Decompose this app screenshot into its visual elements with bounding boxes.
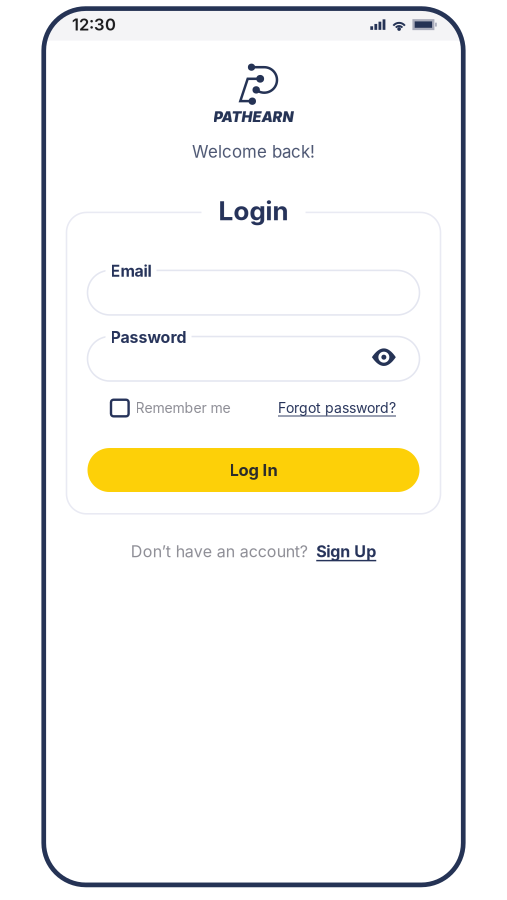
staticText: Sign Up: [316, 542, 376, 561]
staticText: Email: [110, 261, 151, 281]
button[interactable]: Remember me: [111, 399, 231, 416]
staticText: Remember me: [136, 400, 231, 416]
staticText: PATHEARN: [213, 108, 293, 126]
staticText: Log In: [229, 460, 277, 480]
staticText: 12:30: [72, 15, 116, 35]
staticText: Welcome back!: [192, 142, 315, 162]
staticText: Don’t have an account?: [131, 542, 308, 561]
button[interactable]: Log In: [87, 448, 419, 492]
staticText: Password: [110, 327, 186, 347]
staticText: Forgot password?: [278, 400, 396, 416]
button[interactable]: Forgot password?: [278, 399, 396, 416]
button[interactable]: Sign Up: [316, 542, 376, 561]
staticText: Login: [218, 195, 288, 226]
